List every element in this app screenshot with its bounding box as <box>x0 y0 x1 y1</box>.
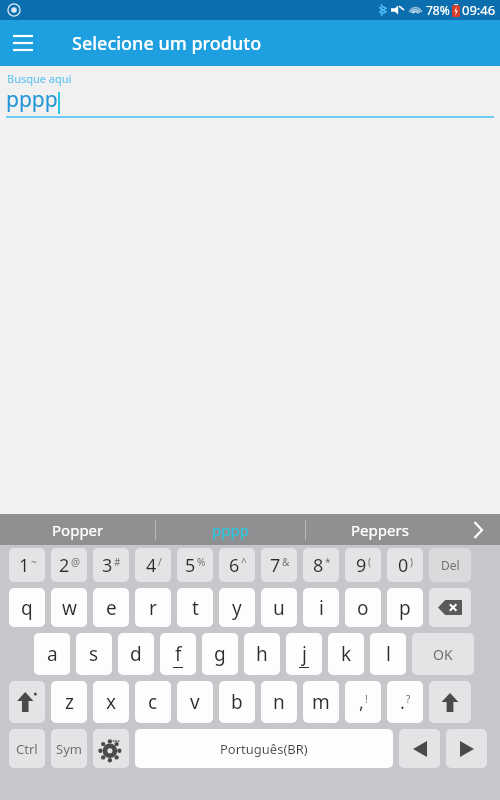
staticText: i <box>319 595 324 621</box>
staticText: k <box>341 641 352 667</box>
button[interactable]: , ! <box>345 681 381 723</box>
button[interactable]: y <box>219 588 255 627</box>
button[interactable]: g <box>202 633 238 675</box>
staticText: y <box>232 595 242 621</box>
button[interactable]: 3 # <box>93 548 129 582</box>
button[interactable]: Symbols <box>51 729 87 768</box>
button[interactable]: 7 & <box>261 548 297 582</box>
staticText: & <box>282 555 290 569</box>
staticText: pppp <box>6 85 58 114</box>
staticText: Sym <box>56 740 82 758</box>
staticText: ) <box>410 555 413 569</box>
button[interactable]: w <box>51 588 87 627</box>
button[interactable]: m <box>303 681 339 723</box>
staticText: ( <box>368 555 371 569</box>
button[interactable]: Peppers <box>306 514 454 545</box>
staticText: ? <box>406 692 411 706</box>
staticText: r <box>149 595 157 621</box>
staticText: 78% <box>426 2 450 18</box>
button[interactable]: k <box>328 633 364 675</box>
button[interactable]: Space, Português(BR) <box>135 729 393 768</box>
staticText: Del <box>441 557 460 573</box>
button[interactable]: Keyboard settings <box>93 729 129 768</box>
button[interactable]: Shift <box>429 681 471 723</box>
staticText: e <box>106 595 117 621</box>
staticText: f <box>175 641 182 667</box>
staticText: x <box>106 689 117 715</box>
button[interactable]: OK <box>412 633 474 675</box>
staticText: g <box>214 641 226 667</box>
button[interactable]: 0 ) <box>387 548 423 582</box>
staticText: Popper <box>52 520 104 540</box>
button[interactable]: u <box>261 588 297 627</box>
staticText: s <box>89 641 99 667</box>
button[interactable]: q <box>9 588 45 627</box>
staticText: d <box>130 641 142 667</box>
button[interactable]: 8 * <box>303 548 339 582</box>
button[interactable]: 2 @ <box>51 548 87 582</box>
staticText: a <box>47 641 58 667</box>
button[interactable]: a <box>34 633 70 675</box>
staticText: c <box>148 689 158 715</box>
button[interactable]: Backspace <box>429 588 471 627</box>
button[interactable]: n <box>261 681 297 723</box>
staticText: h <box>256 641 268 667</box>
button[interactable]: r <box>135 588 171 627</box>
button[interactable]: h <box>244 633 280 675</box>
button[interactable]: z <box>51 681 87 723</box>
staticText: 1 <box>19 553 30 578</box>
button[interactable]: x <box>93 681 129 723</box>
staticText: 2 <box>59 553 70 578</box>
button[interactable]: More suggestions <box>456 514 500 545</box>
button[interactable]: b <box>219 681 255 723</box>
button[interactable]: t <box>177 588 213 627</box>
button[interactable]: pppp <box>156 514 305 545</box>
button[interactable]: . ? <box>387 681 423 723</box>
button[interactable]: f <box>160 633 196 675</box>
staticText: pppp <box>212 520 249 540</box>
button[interactable]: Move cursor right <box>446 729 487 768</box>
staticText: o <box>357 595 369 621</box>
button[interactable]: 5 % <box>177 548 213 582</box>
staticText: 6 <box>229 553 240 578</box>
button[interactable]: s <box>76 633 112 675</box>
button[interactable]: i <box>303 588 339 627</box>
button[interactable]: j <box>286 633 322 675</box>
staticText: 3 <box>102 553 113 578</box>
button[interactable]: l <box>370 633 406 675</box>
staticText: Selecione um produto <box>72 31 262 56</box>
button[interactable]: 4 / <box>135 548 171 582</box>
staticText: m <box>312 689 330 715</box>
staticText: n <box>273 689 285 715</box>
button[interactable]: e <box>93 588 129 627</box>
staticText: OK <box>433 645 453 664</box>
button[interactable]: p <box>387 588 423 627</box>
staticText: Ctrl <box>16 740 38 758</box>
staticText: * <box>325 555 331 569</box>
staticText: @ <box>71 555 80 569</box>
staticText: 4 <box>146 553 157 578</box>
button[interactable]: 1 ~ <box>9 548 45 582</box>
staticText: 7 <box>270 553 281 578</box>
staticText: z <box>65 689 74 715</box>
button[interactable]: Delete <box>429 548 471 582</box>
staticText: # <box>114 555 121 569</box>
button[interactable]: Popper <box>0 514 155 545</box>
button[interactable]: Shift <box>9 681 45 723</box>
button[interactable]: Move cursor left <box>399 729 440 768</box>
button[interactable]: c <box>135 681 171 723</box>
staticText: 8 <box>313 553 324 578</box>
button[interactable]: 6 ^ <box>219 548 255 582</box>
staticText: Busque aqui <box>7 71 72 86</box>
button[interactable]: d <box>118 633 154 675</box>
staticText: b <box>231 689 243 715</box>
staticText: 09:46 <box>462 1 496 19</box>
staticText: v <box>190 689 200 715</box>
button[interactable]: Open navigation menu <box>0 20 46 66</box>
staticText: p <box>399 595 411 621</box>
button[interactable]: v <box>177 681 213 723</box>
button[interactable]: Ctrl <box>9 729 45 768</box>
button[interactable]: 9 ( <box>345 548 381 582</box>
button[interactable]: o <box>345 588 381 627</box>
staticText: Português(BR) <box>220 740 308 758</box>
